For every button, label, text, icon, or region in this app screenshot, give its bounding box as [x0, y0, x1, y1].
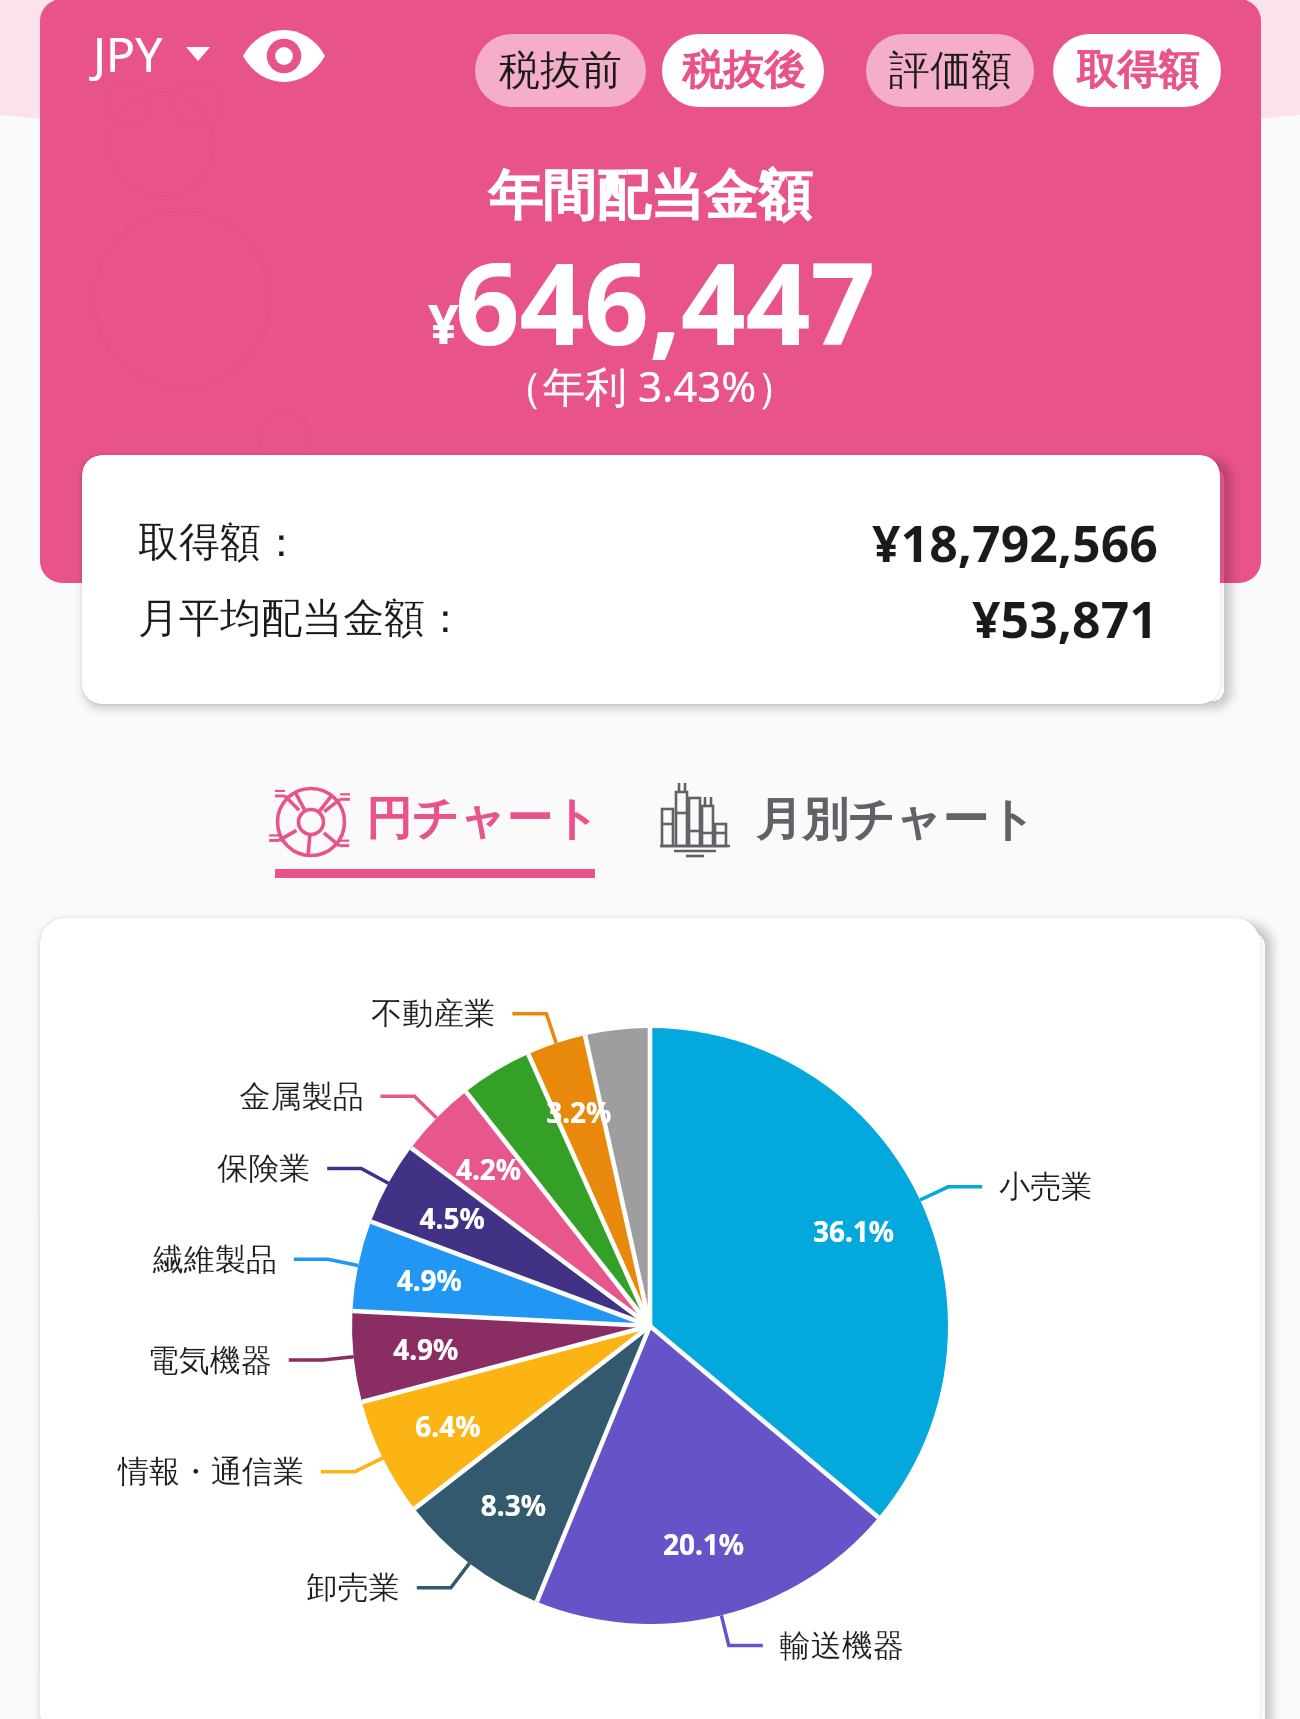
button[interactable]: 円チャート: [270, 784, 600, 902]
button[interactable]: 評価額: [866, 34, 1034, 107]
button[interactable]: Toggle amount visibility: [243, 32, 325, 80]
staticText: 月別チャート: [756, 791, 1036, 849]
staticText: ¥: [428, 286, 459, 360]
staticText: 円チャート: [366, 790, 600, 848]
staticText: 税抜前: [499, 45, 622, 97]
button[interactable]: 取得額: [1053, 34, 1221, 107]
staticText: 取得額: [1076, 45, 1199, 97]
button[interactable]: 月別チャート: [655, 784, 1025, 879]
staticText: JPY: [93, 21, 163, 86]
staticText: 月平均配当金額：: [138, 593, 466, 645]
button[interactable]: JPY: [86, 14, 218, 90]
staticText: ¥18,792,566: [872, 509, 1158, 577]
staticText: 税抜後: [682, 45, 805, 97]
button[interactable]: 税抜後: [662, 34, 824, 107]
button[interactable]: 税抜前: [475, 34, 646, 107]
staticText: 取得額：: [138, 517, 302, 569]
staticText: 646,447: [455, 224, 876, 378]
staticText: ¥53,871: [972, 585, 1158, 653]
staticText: 評価額: [889, 45, 1012, 97]
staticText: （年利 3.43%）: [501, 357, 799, 414]
staticText: 年間配当金額: [488, 162, 812, 230]
